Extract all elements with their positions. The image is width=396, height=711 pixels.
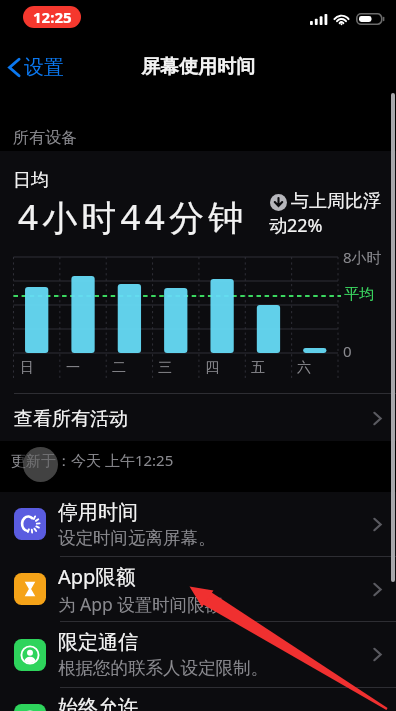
staticText: 屏幕使用时间 [141, 55, 255, 79]
staticText: 平均 [344, 285, 374, 304]
staticText: 所有设备 [13, 128, 77, 148]
button[interactable]: App限额 [0, 557, 396, 621]
staticText: 0 [343, 341, 352, 361]
staticText: 4小时44分钟 [18, 193, 248, 241]
staticText: 限定通信 [58, 630, 138, 655]
staticText: 动22% [269, 213, 323, 238]
staticText: App限额 [58, 563, 136, 590]
staticText: 查看所有活动 [14, 407, 128, 431]
staticText: 三 [158, 359, 172, 377]
button[interactable]: 始终允许 [0, 688, 396, 711]
staticText: 二 [112, 359, 126, 377]
staticText: 一 [66, 359, 80, 377]
staticText: 12:25 [33, 7, 72, 27]
button[interactable]: 设置 [5, 49, 66, 86]
staticText: 停用时间 [58, 500, 138, 525]
staticText: 五 [251, 359, 265, 377]
staticText: 日均 [13, 169, 49, 192]
staticText: 更新于：今天 上午12:25 [11, 450, 174, 470]
staticText: 8小时 [343, 247, 382, 267]
button[interactable]: 停用时间 [0, 492, 396, 556]
staticText: 设置 [24, 55, 64, 80]
staticText: 根据您的联系人设定限制。 [58, 657, 268, 679]
button[interactable]: 查看所有活动 [0, 395, 396, 442]
button[interactable]: 限定通信 [0, 622, 396, 687]
staticText: 六 [297, 359, 311, 377]
staticText: 始终允许 [58, 695, 138, 711]
staticText: 为 App 设置时间限额 [58, 592, 223, 616]
staticText: 日 [20, 359, 34, 377]
staticText: 设定时间远离屏幕。 [58, 527, 216, 549]
staticText: 与上周比浮 [291, 190, 381, 213]
staticText: 四 [205, 359, 219, 377]
